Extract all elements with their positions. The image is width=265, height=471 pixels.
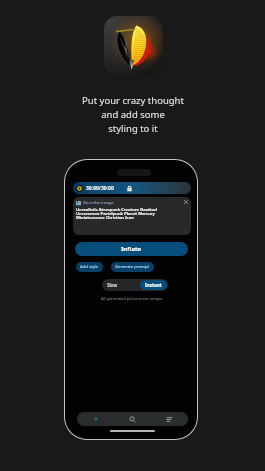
button[interactable]: Add style: [76, 262, 103, 272]
staticText: All generated pictures are unique: [101, 296, 163, 301]
staticText: 30:00/30:00: [86, 185, 114, 192]
staticText: Generate prompt: [115, 264, 150, 270]
staticText: Inflate: [121, 245, 142, 253]
button[interactable]: Library: [151, 412, 188, 426]
button[interactable]: Inflate: [75, 242, 188, 256]
staticText: Put your crazy thought and add some styl…: [82, 94, 184, 134]
button[interactable]: Instant: [140, 280, 167, 290]
button[interactable]: Generate prompt: [111, 262, 154, 272]
staticText: Describe image: [83, 200, 114, 206]
button[interactable]: Create: [77, 412, 114, 426]
staticText: Instant: [145, 282, 162, 288]
staticText: Unrealistic Atompunk Creature Nautical U…: [76, 207, 158, 221]
button[interactable]: Search: [114, 412, 151, 426]
staticText: Slow: [107, 282, 118, 288]
staticText: Add style: [80, 264, 99, 270]
